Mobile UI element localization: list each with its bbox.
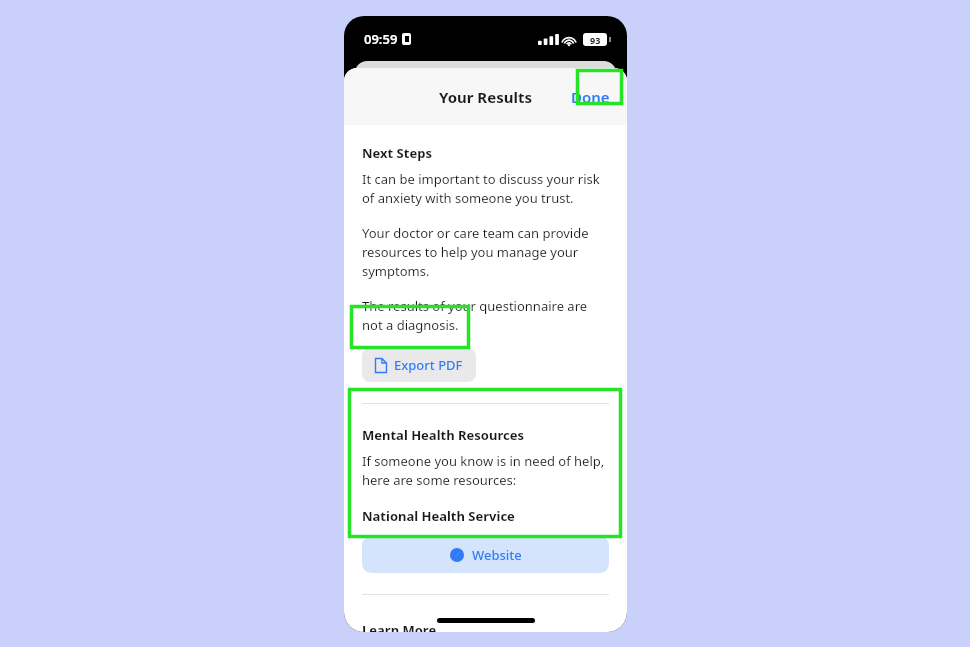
staticText: Your Results: [439, 87, 532, 107]
button[interactable]: Done: [565, 82, 616, 112]
staticText: Done: [571, 87, 610, 107]
staticText: 09:59: [364, 30, 398, 48]
staticText: National Health Service: [362, 507, 515, 525]
staticText: Website: [472, 546, 522, 564]
staticText: 93: [590, 34, 601, 46]
staticText: The results of your questionnaire are no…: [362, 297, 609, 334]
staticText: It can be important to discuss your risk…: [362, 170, 609, 207]
other: Website: [450, 548, 464, 562]
staticText: Mental Health Resources: [362, 426, 524, 444]
staticText: Export PDF: [394, 356, 463, 374]
staticText: If someone you know is in need of help, …: [362, 452, 609, 489]
other: Export PDF document: [375, 358, 387, 373]
staticText: Next Steps: [362, 144, 432, 162]
button[interactable]: Export PDF document: [362, 348, 476, 382]
button[interactable]: Website: [362, 536, 609, 573]
staticText: Learn More: [362, 621, 437, 632]
staticText: Your doctor or care team can provide res…: [362, 224, 609, 280]
